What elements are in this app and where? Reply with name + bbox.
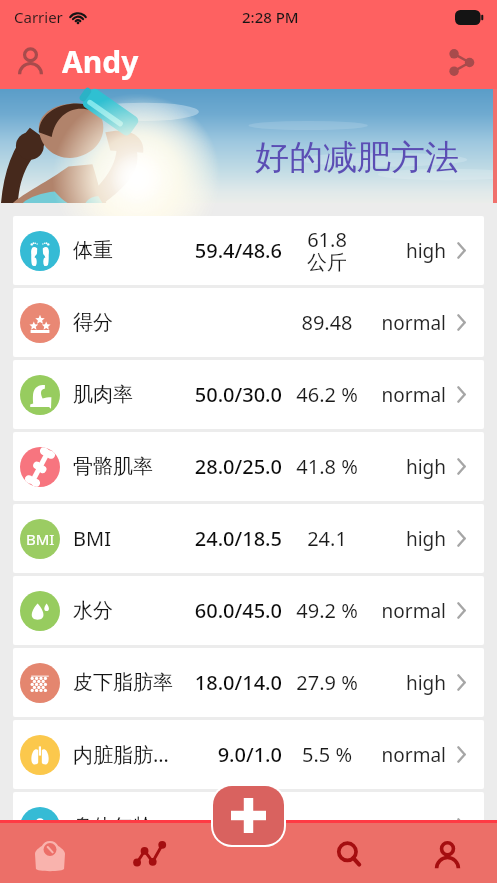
button[interactable]: 得分: [13, 288, 484, 357]
staticText: high: [356, 526, 446, 552]
staticText: 27.9 %: [287, 669, 367, 696]
staticText: 32.8: [287, 813, 367, 840]
staticText: 18.0/14.0: [162, 669, 282, 696]
staticText: 内脏脂肪…: [73, 741, 181, 768]
staticText: 2:28 PM: [242, 7, 299, 27]
staticText: [162, 813, 282, 840]
button[interactable]: 皮下脂肪率: [13, 648, 484, 717]
staticText: Andy: [62, 41, 139, 82]
button[interactable]: Search: [299, 823, 398, 883]
button[interactable]: Trends: [100, 823, 200, 883]
button[interactable]: Scale: [0, 823, 100, 883]
staticText: 89.48: [287, 309, 367, 336]
staticText: normal: [356, 382, 446, 408]
button[interactable]: Share: [439, 40, 483, 84]
staticText: 得分: [73, 310, 181, 335]
staticText: Carrier: [14, 7, 63, 27]
button[interactable]: 身体年龄: [13, 792, 484, 861]
button[interactable]: 体重: [13, 216, 484, 285]
staticText: 59.4/48.6: [162, 237, 282, 264]
staticText: BMI: [26, 529, 55, 549]
button[interactable]: BMI: [13, 504, 484, 573]
staticText: normal: [356, 310, 446, 336]
staticText: 61.8 公斤: [287, 226, 367, 275]
button[interactable]: 肌肉率: [13, 360, 484, 429]
staticText: high: [356, 238, 446, 264]
staticText: 好的减肥方法: [255, 136, 459, 179]
staticText: 体重: [73, 238, 181, 263]
staticText: normal: [356, 742, 446, 768]
button[interactable]: Add record: [213, 786, 284, 845]
staticText: 24.1: [287, 525, 367, 552]
staticText: high: [356, 670, 446, 696]
staticText: 60.0/45.0: [162, 597, 282, 624]
staticText: 9.0/1.0: [162, 741, 282, 768]
button[interactable]: Profile: [398, 823, 497, 883]
staticText: 骨骼肌率: [73, 454, 181, 479]
button[interactable]: 骨骼肌率: [13, 432, 484, 501]
staticText: 肌肉率: [73, 382, 181, 407]
button[interactable]: 内脏脂肪…: [13, 720, 484, 789]
button[interactable]: 水分: [13, 576, 484, 645]
staticText: 5.5 %: [287, 741, 367, 768]
staticText: 24.0/18.5: [162, 525, 282, 552]
staticText: 28.0/25.0: [162, 453, 282, 480]
staticText: BMI: [73, 525, 181, 552]
staticText: normal: [356, 598, 446, 624]
staticText: 身体年龄: [73, 814, 181, 839]
staticText: 49.2 %: [287, 597, 367, 624]
staticText: 水分: [73, 598, 181, 623]
staticText: high: [356, 454, 446, 480]
staticText: 皮下脂肪率: [73, 670, 181, 695]
staticText: 46.2 %: [287, 381, 367, 408]
staticText: 41.8 %: [287, 453, 367, 480]
staticText: 50.0/30.0: [162, 381, 282, 408]
staticText: [356, 814, 446, 840]
